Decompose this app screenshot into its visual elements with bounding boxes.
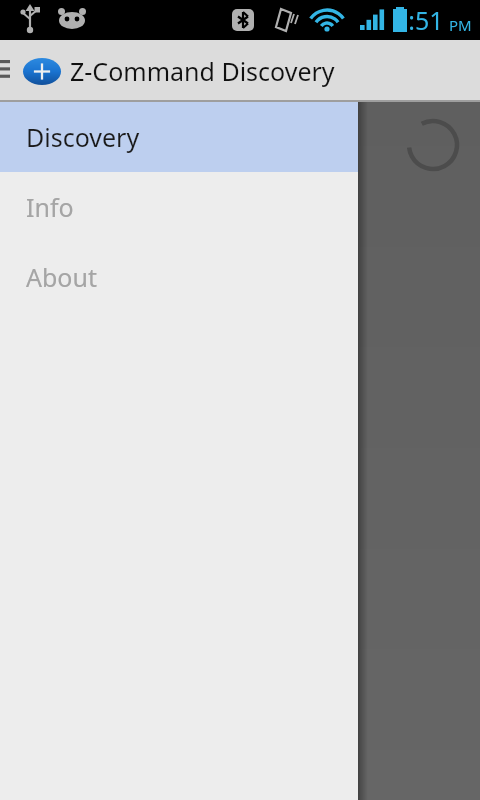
staticText: Z-Command Discovery <box>70 54 335 88</box>
button[interactable]: About <box>0 242 358 312</box>
staticText: About <box>26 260 97 294</box>
staticText: 3:51 <box>394 3 444 37</box>
button[interactable]: Open navigation drawer <box>0 40 14 102</box>
staticText: PM <box>449 15 472 35</box>
button[interactable]: Info <box>0 172 358 242</box>
button[interactable]: Discovery <box>0 102 358 172</box>
staticText: Discovery <box>26 120 140 154</box>
staticText: Info <box>26 190 74 224</box>
